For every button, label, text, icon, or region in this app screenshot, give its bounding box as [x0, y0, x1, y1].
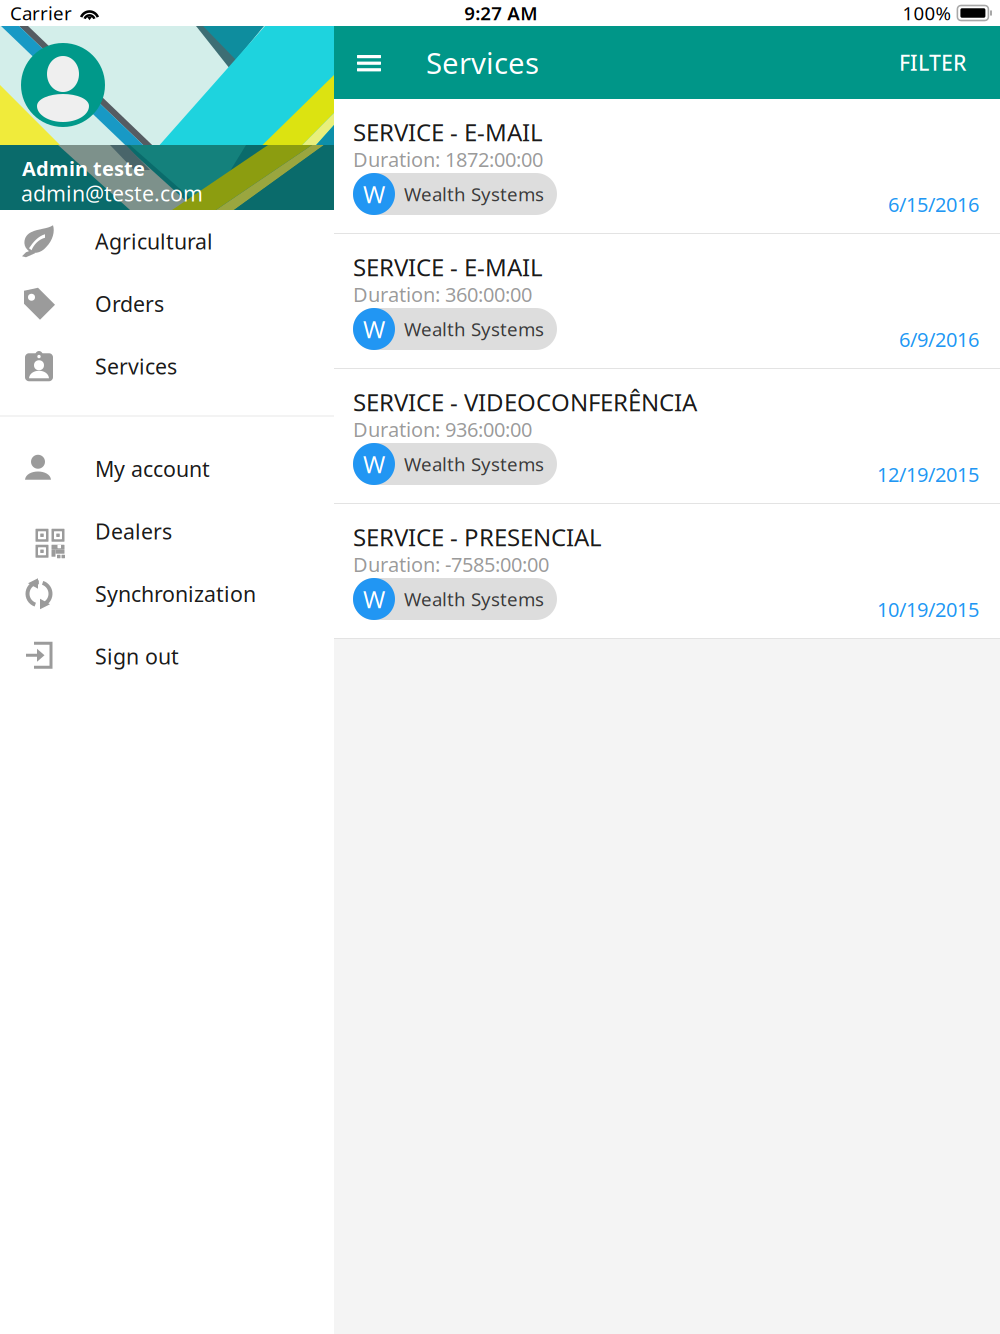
staticText: Duration: 1872:00:00: [353, 146, 543, 173]
button[interactable]: SERVICE - PRESENCIAL: [334, 504, 1000, 639]
staticText: Duration: -7585:00:00: [353, 551, 549, 578]
staticText: Wealth Systems: [404, 452, 544, 476]
staticText: W: [363, 313, 385, 345]
staticText: Wealth Systems: [404, 587, 544, 611]
staticText: Wealth Systems: [404, 317, 544, 341]
staticText: 100%: [902, 1, 951, 25]
staticText: Admin teste: [22, 155, 145, 182]
staticText: 9:27 AM: [464, 1, 537, 25]
staticText: W: [363, 178, 385, 210]
staticText: Orders: [95, 290, 164, 318]
staticText: SERVICE - PRESENCIAL: [353, 521, 602, 553]
button[interactable]: My account: [0, 437, 334, 500]
staticText: Duration: 936:00:00: [353, 416, 532, 443]
staticText: Wealth Systems: [404, 182, 544, 206]
staticText: Services: [95, 352, 177, 380]
button[interactable]: Agricultural: [0, 210, 334, 272]
staticText: Services: [426, 43, 539, 82]
staticText: Agricultural: [95, 227, 213, 255]
staticText: SERVICE - E-MAIL: [353, 251, 543, 283]
button[interactable]: Dealers: [0, 500, 334, 562]
staticText: 10/19/2015: [877, 596, 979, 623]
staticText: SERVICE - VIDEOCONFERÊNCIA: [353, 386, 697, 418]
button[interactable]: Services: [0, 335, 334, 397]
staticText: 6/9/2016: [899, 326, 979, 353]
staticText: Sign out: [95, 642, 179, 670]
button[interactable]: Orders: [0, 272, 334, 335]
button[interactable]: SERVICE - E-MAIL: [334, 99, 1000, 234]
staticText: Duration: 360:00:00: [353, 281, 532, 308]
button[interactable]: SERVICE - VIDEOCONFERÊNCIA: [334, 369, 1000, 504]
staticText: Synchronization: [95, 580, 256, 608]
button[interactable]: Sign out: [0, 625, 334, 687]
staticText: 12/19/2015: [877, 461, 979, 488]
staticText: My account: [95, 455, 210, 483]
staticText: 6/15/2016: [888, 191, 979, 218]
staticText: Carrier: [10, 1, 72, 25]
button[interactable]: Synchronization: [0, 562, 334, 625]
button[interactable]: Menu: [346, 37, 396, 87]
staticText: W: [363, 448, 385, 480]
staticText: FILTER: [899, 48, 966, 77]
button[interactable]: FILTER: [887, 38, 978, 87]
staticText: admin@teste.com: [21, 179, 203, 207]
staticText: SERVICE - E-MAIL: [353, 116, 543, 148]
button[interactable]: SERVICE - E-MAIL: [334, 234, 1000, 369]
staticText: W: [363, 583, 385, 615]
staticText: Dealers: [95, 517, 172, 545]
